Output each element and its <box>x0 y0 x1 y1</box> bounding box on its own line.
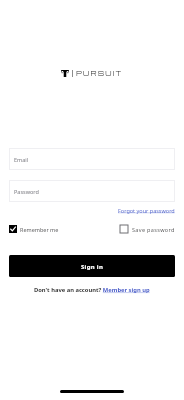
button[interactable]: Sign in <box>9 255 175 277</box>
button[interactable]: Forgot your password <box>118 207 175 214</box>
button[interactable]: Password <box>9 180 175 202</box>
staticText: PURSUIT <box>76 69 123 78</box>
staticText: Password <box>14 188 39 195</box>
staticText: Save password <box>132 226 175 233</box>
button[interactable]: Remember me <box>9 225 59 233</box>
staticText: Remember me <box>20 226 59 233</box>
staticText: Email <box>14 156 29 163</box>
button[interactable]: Email <box>9 148 175 170</box>
button[interactable]: Don't have an account? Member sign up <box>34 286 150 294</box>
button[interactable]: Save password <box>120 225 175 233</box>
staticText: Sign in <box>81 263 104 271</box>
